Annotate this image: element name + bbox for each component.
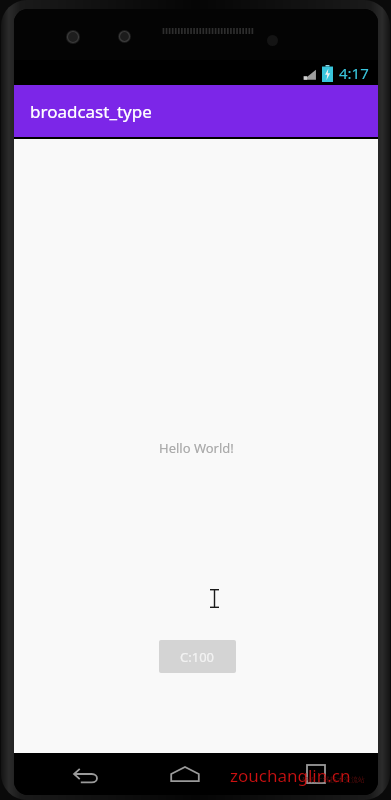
staticText: 码农上线技术交流站 xyxy=(302,775,365,784)
staticText: zouchanglin.cn xyxy=(230,764,351,787)
button[interactable]: broadcast_type xyxy=(14,85,378,137)
staticText: broadcast_type xyxy=(30,100,152,123)
button[interactable]: Home xyxy=(163,753,207,795)
staticText: C:100 xyxy=(180,648,215,666)
button[interactable]: Recents xyxy=(294,753,338,795)
staticText: Hello World! xyxy=(159,439,234,457)
staticText: 4:17 xyxy=(339,63,369,83)
button[interactable]: C:100 xyxy=(159,640,236,673)
button[interactable]: Back xyxy=(64,753,108,795)
